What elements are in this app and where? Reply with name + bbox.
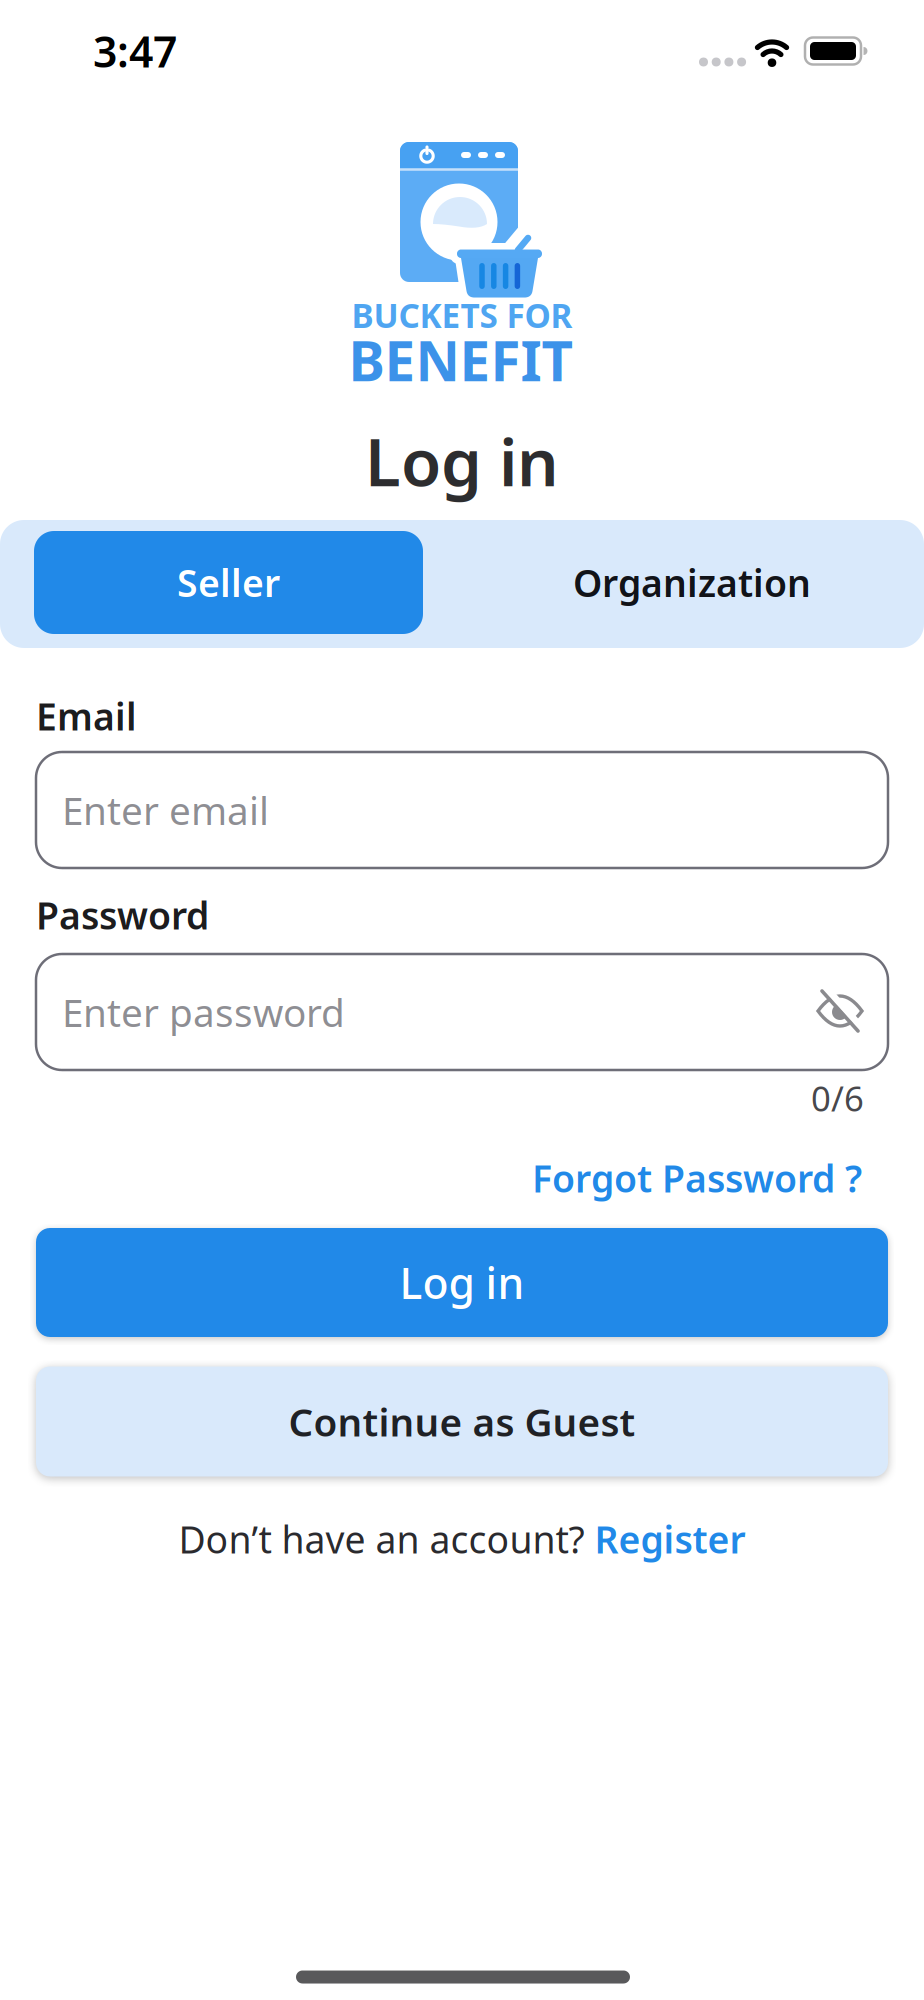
staticText: Log in	[365, 418, 559, 504]
staticText: Seller	[177, 558, 280, 607]
staticText: Log in	[399, 1254, 524, 1311]
staticText: Forgot Password ?	[532, 1153, 862, 1203]
staticText: 0/6	[811, 1075, 864, 1121]
staticText: Register	[594, 1514, 745, 1564]
staticText: Enter password	[62, 986, 345, 1038]
button[interactable]: Log in	[36, 1228, 888, 1337]
staticText: BUCKETS FOR	[351, 293, 572, 337]
staticText: Email	[36, 691, 137, 741]
button[interactable]: Enter password	[36, 954, 888, 1070]
staticText: Don’t have an account?	[178, 1514, 584, 1564]
button[interactable]: Continue as Guest	[36, 1366, 888, 1476]
staticText: BENEFIT	[348, 324, 573, 396]
button[interactable]: Organization	[497, 531, 886, 634]
button[interactable]: Forgot Password ?	[532, 1153, 862, 1203]
button[interactable]: Seller	[34, 531, 423, 634]
button[interactable]: Register	[594, 1514, 745, 1564]
staticText: Enter email	[62, 784, 269, 836]
staticText: 3:47	[93, 23, 177, 79]
staticText: Password	[36, 890, 209, 940]
button[interactable]: Show password	[810, 981, 870, 1041]
button[interactable]: Enter email	[36, 752, 888, 868]
staticText: Organization	[573, 558, 811, 607]
staticText: Continue as Guest	[288, 1396, 635, 1447]
